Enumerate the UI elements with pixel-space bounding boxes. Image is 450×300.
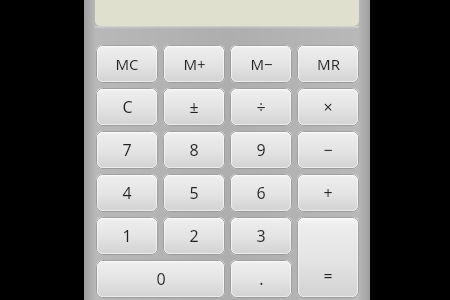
staticText: 3 — [256, 225, 266, 247]
staticText: MR — [317, 54, 340, 74]
staticText: ± — [189, 96, 199, 118]
staticText: + — [323, 182, 333, 204]
button[interactable]: 5 — [163, 174, 225, 212]
staticText: 0 — [156, 268, 166, 290]
staticText: M+ — [183, 54, 206, 74]
button[interactable]: 0 — [96, 260, 225, 298]
staticText: MC — [115, 54, 139, 74]
button[interactable]: 2 — [163, 217, 225, 255]
button[interactable]: 4 — [96, 174, 158, 212]
staticText: M− — [250, 54, 273, 74]
staticText: 9 — [256, 139, 266, 161]
button[interactable]: 1 — [96, 217, 158, 255]
button[interactable]: 6 — [230, 174, 292, 212]
button[interactable]: 7 — [96, 131, 158, 169]
staticText: × — [323, 96, 333, 118]
button[interactable]: × — [297, 88, 359, 126]
button[interactable]: 9 — [230, 131, 292, 169]
button[interactable]: + — [297, 174, 359, 212]
staticText: 2 — [189, 225, 199, 247]
staticText: 4 — [122, 182, 132, 204]
staticText: C — [122, 96, 133, 118]
button[interactable]: ÷ — [230, 88, 292, 126]
button[interactable]: MC — [96, 45, 158, 83]
button[interactable]: MR — [297, 45, 359, 83]
staticText: 6 — [256, 182, 266, 204]
staticText: . — [259, 268, 264, 290]
staticText: 7 — [122, 139, 132, 161]
button[interactable]: − — [297, 131, 359, 169]
staticText: − — [323, 139, 333, 161]
button[interactable]: Equals — [297, 217, 359, 298]
staticText: = — [323, 265, 333, 287]
staticText: ÷ — [256, 96, 266, 118]
staticText: 1 — [122, 225, 132, 247]
button[interactable]: C — [96, 88, 158, 126]
button[interactable]: . — [230, 260, 292, 298]
button[interactable]: M− — [230, 45, 292, 83]
staticText: 5 — [189, 182, 199, 204]
button[interactable]: 3 — [230, 217, 292, 255]
staticText: 8 — [189, 139, 199, 161]
button[interactable]: M+ — [163, 45, 225, 83]
button[interactable]: 8 — [163, 131, 225, 169]
button[interactable]: ± — [163, 88, 225, 126]
